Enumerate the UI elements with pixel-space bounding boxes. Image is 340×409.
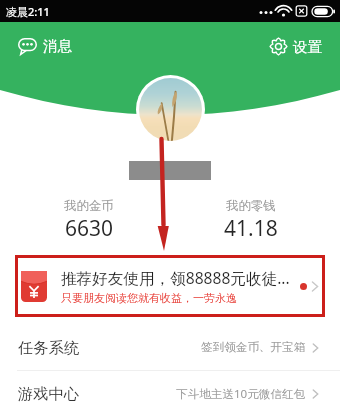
staticText: 推荐好友使用，领88888元收徒... [61,267,290,288]
button[interactable]: 任务系统 [0,325,340,370]
button[interactable]: 消息 [0,30,84,62]
staticText: 只要朋友阅读您就有收益，一劳永逸 [61,291,237,305]
button[interactable]: 我的金币 [44,198,134,243]
staticText: 凌晨2:11 [6,4,50,19]
staticText: 我的零钱 [226,198,276,214]
staticText: 游戏中心 [18,384,80,403]
button[interactable]: 我的零钱 [206,198,296,243]
staticText: 任务系统 [18,338,80,357]
button[interactable]: Profile photo [136,75,205,144]
staticText: 签到领金币、开宝箱 [201,340,306,355]
button[interactable]: 推荐好友使用，领88888元收徒... [15,255,325,317]
staticText: 设置 [293,38,322,56]
staticText: 下斗地主送10元微信红包 [176,386,306,402]
button[interactable]: 设置 [257,30,340,63]
staticText: 6630 [65,214,114,243]
staticText: 41.18 [224,214,278,243]
staticText: 我的金币 [64,198,114,214]
button[interactable]: 游戏中心 [0,371,340,409]
staticText: 消息 [43,37,72,55]
